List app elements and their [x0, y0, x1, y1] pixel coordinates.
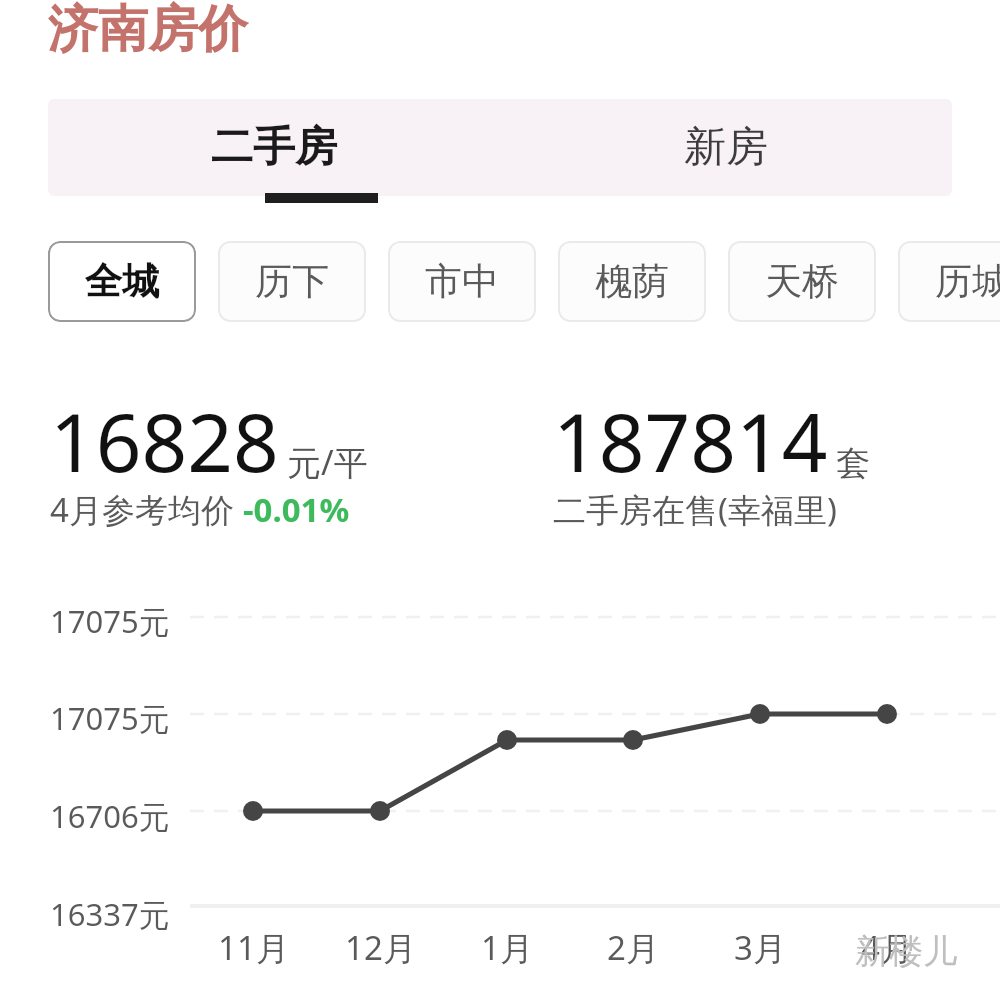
button[interactable]: 市中: [388, 241, 536, 322]
staticText: 二手房: [211, 121, 337, 174]
staticText: 新房: [684, 121, 768, 174]
staticText: 历下: [255, 258, 329, 305]
staticText: 二手房在售(幸福里): [553, 487, 837, 532]
staticText: 济南房价: [48, 0, 248, 61]
staticText: 全城: [85, 258, 159, 305]
staticText: 17075元: [50, 600, 170, 642]
staticText: 12月: [345, 925, 416, 970]
staticText: 16337元: [50, 893, 170, 935]
staticText: 槐荫: [595, 258, 669, 305]
staticText: 4月参考均价: [50, 487, 243, 532]
staticText: 天桥: [765, 258, 839, 305]
staticText: 187814: [553, 386, 828, 495]
staticText: 16706元: [50, 795, 170, 837]
staticText: 1月: [481, 925, 533, 970]
staticText: 新楼儿: [855, 930, 957, 973]
staticText: 市中: [425, 258, 499, 305]
staticText: -0.01%: [243, 487, 350, 532]
staticText: 元/平: [287, 439, 368, 485]
staticText: 16828: [50, 386, 279, 495]
staticText: 套: [836, 442, 870, 485]
button[interactable]: 历城: [898, 241, 1000, 322]
button[interactable]: 新房: [500, 99, 952, 196]
staticText: 11月: [218, 925, 289, 970]
button[interactable]: 槐荫: [558, 241, 706, 322]
staticText: 3月: [734, 925, 786, 970]
button[interactable]: 历下: [218, 241, 366, 322]
staticText: 2月: [607, 925, 659, 970]
staticText: 4月: [861, 925, 913, 970]
staticText: 17075元: [50, 697, 170, 739]
button[interactable]: 二手房: [48, 99, 500, 196]
button[interactable]: 全城: [48, 241, 196, 322]
button[interactable]: 天桥: [728, 241, 876, 322]
staticText: 历城: [935, 258, 1000, 305]
